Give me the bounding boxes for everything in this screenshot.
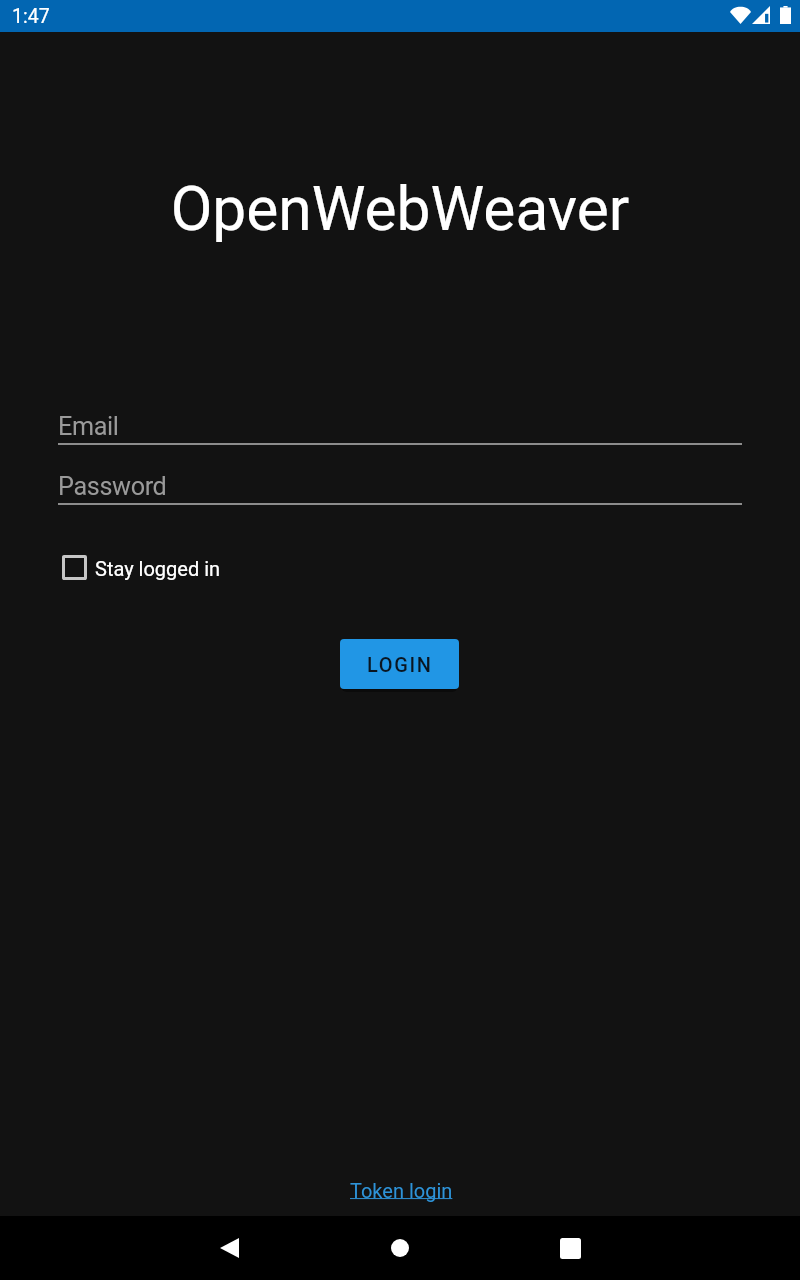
staticText: Token login: [350, 1179, 453, 1202]
staticText: LOGIN: [367, 653, 433, 676]
button[interactable]: Email: [58, 400, 742, 445]
button[interactable]: LOGIN: [340, 639, 459, 689]
staticText: OpenWebWeaver: [0, 174, 800, 245]
button[interactable]: Stay logged in: [57, 552, 227, 585]
button[interactable]: Back: [197, 1216, 261, 1280]
staticText: Password: [58, 472, 167, 502]
staticText: 1:47: [12, 5, 50, 28]
button[interactable]: Recent apps: [538, 1216, 602, 1280]
button[interactable]: Token login: [342, 1171, 461, 1210]
button[interactable]: Password: [58, 460, 742, 505]
staticText: Stay logged in: [95, 557, 221, 580]
staticText: Email: [58, 412, 119, 442]
button[interactable]: Home: [368, 1216, 432, 1280]
